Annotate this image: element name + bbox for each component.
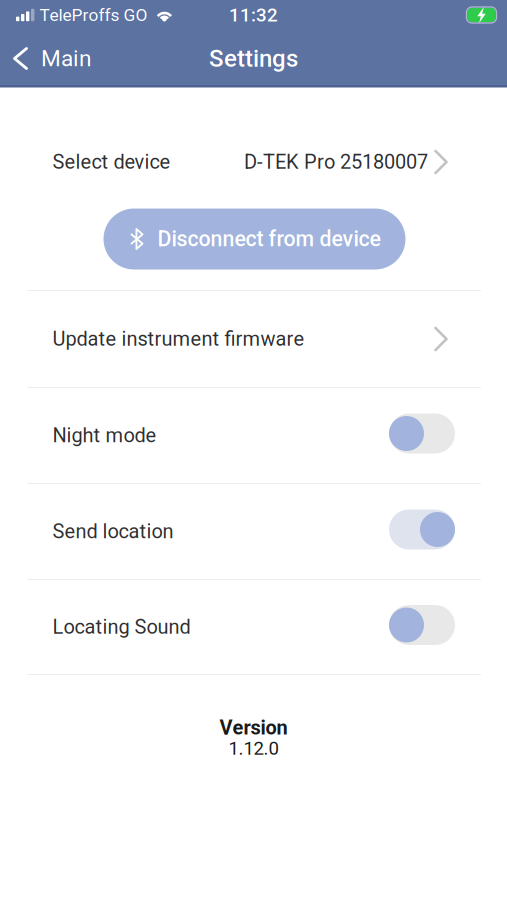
staticText: 1.12.0 [228, 737, 278, 759]
button[interactable]: Locating Sound [0, 580, 507, 674]
staticText: Night mode [52, 424, 156, 447]
staticText: TeleProffs GO [39, 5, 147, 25]
staticText: Main [41, 45, 92, 72]
button[interactable]: Send location [0, 484, 507, 579]
button[interactable]: Update instrument firmware [0, 291, 507, 387]
staticText: Settings [209, 44, 298, 72]
staticText: Version [219, 716, 287, 739]
button[interactable]: Disconnect from device [101, 198, 405, 290]
staticText: Update instrument firmware [52, 327, 304, 351]
staticText: Locating Sound [52, 615, 190, 639]
button[interactable]: Select device [0, 125, 507, 199]
staticText: D-TEK Pro 25180007 [244, 150, 428, 174]
staticText: Select device [52, 150, 170, 174]
staticText: 11:32 [229, 4, 278, 26]
button[interactable]: Night mode [0, 388, 507, 483]
staticText: Disconnect from device [157, 226, 380, 251]
staticText: Send location [52, 520, 173, 543]
button[interactable]: Main [0, 32, 106, 84]
